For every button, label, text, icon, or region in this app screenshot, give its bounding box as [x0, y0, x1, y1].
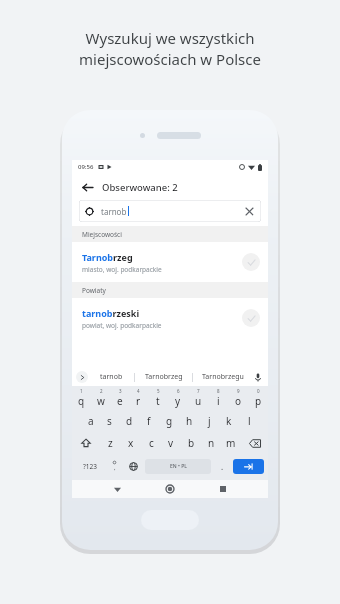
- staticText: 0: [257, 388, 260, 394]
- button[interactable]: j: [199, 410, 219, 432]
- button[interactable]: tarnobrzeski: [72, 298, 268, 338]
- button[interactable]: z: [100, 432, 121, 454]
- button[interactable]: tarnob: [79, 200, 261, 222]
- button[interactable]: 6: [168, 386, 188, 410]
- staticText: g: [166, 414, 173, 428]
- button[interactable]: 2: [91, 386, 110, 410]
- button[interactable]: Clear: [243, 205, 255, 217]
- button[interactable]: 0: [248, 386, 268, 410]
- staticText: j: [208, 414, 211, 428]
- button[interactable]: c: [141, 432, 161, 454]
- button[interactable]: Follow: [242, 309, 260, 327]
- button[interactable]: m: [221, 432, 241, 454]
- button[interactable]: .: [213, 454, 232, 478]
- staticText: ,: [114, 464, 116, 472]
- button[interactable]: a: [81, 410, 100, 432]
- button[interactable]: Back: [78, 178, 96, 196]
- button[interactable]: More suggestions: [76, 371, 88, 383]
- staticText: 9: [237, 388, 240, 394]
- button[interactable]: 7: [188, 386, 208, 410]
- button[interactable]: Follow: [242, 253, 260, 271]
- button[interactable]: v: [161, 432, 181, 454]
- staticText: 4: [137, 388, 140, 394]
- staticText: 3: [119, 388, 122, 394]
- staticText: 2: [100, 388, 103, 394]
- button[interactable]: Comma: [105, 454, 124, 478]
- button[interactable]: Enter: [233, 459, 264, 474]
- staticText: 6: [177, 388, 180, 394]
- staticText: y: [175, 394, 181, 408]
- staticText: n: [208, 436, 215, 450]
- staticText: 8: [217, 388, 220, 394]
- button[interactable]: 5: [148, 386, 168, 410]
- staticText: k: [226, 414, 232, 428]
- staticText: o: [235, 394, 242, 408]
- staticText: 7: [197, 388, 200, 394]
- button[interactable]: Back: [109, 481, 125, 497]
- staticText: l: [248, 414, 251, 428]
- staticText: m: [226, 436, 236, 450]
- button[interactable]: f: [139, 410, 159, 432]
- button[interactable]: 1: [72, 386, 91, 410]
- staticText: e: [117, 394, 123, 408]
- button[interactable]: n: [201, 432, 221, 454]
- staticText: Powiaty: [82, 286, 106, 295]
- button[interactable]: EN • PL: [145, 459, 211, 474]
- staticText: z: [108, 436, 113, 450]
- staticText: Wyszukuj we wszystkich miejscowościach w…: [79, 28, 261, 70]
- staticText: f: [147, 414, 151, 428]
- staticText: EN • PL: [170, 463, 187, 470]
- staticText: Obserwowane: 2: [102, 181, 178, 194]
- button[interactable]: Voice input: [252, 371, 264, 383]
- button[interactable]: 8: [208, 386, 228, 410]
- staticText: Tarnobrzegu: [202, 372, 244, 382]
- staticText: Miejscowości: [82, 230, 122, 239]
- button[interactable]: g: [159, 410, 179, 432]
- button[interactable]: tarnob: [88, 372, 134, 382]
- button[interactable]: 9: [228, 386, 248, 410]
- button[interactable]: l: [239, 410, 259, 432]
- button[interactable]: Home: [162, 481, 178, 497]
- staticText: tarnob: [100, 372, 123, 382]
- button[interactable]: Backspace: [241, 432, 268, 454]
- staticText: w: [97, 394, 105, 408]
- staticText: miasto, woj. podkarpackie: [82, 265, 162, 274]
- button[interactable]: Tarnobrzegu: [193, 372, 252, 382]
- staticText: 5: [157, 388, 160, 394]
- button[interactable]: Tarnobrzeg: [72, 242, 268, 282]
- staticText: h: [186, 414, 193, 428]
- button[interactable]: 4: [129, 386, 148, 410]
- staticText: .: [221, 461, 224, 472]
- button[interactable]: s: [100, 410, 119, 432]
- button[interactable]: Change language: [124, 454, 143, 478]
- staticText: c: [149, 436, 154, 450]
- staticText: b: [188, 436, 195, 450]
- staticText: tarnobrzeski: [82, 307, 140, 319]
- staticText: 09:56: [78, 163, 94, 171]
- staticText: d: [126, 414, 133, 428]
- staticText: a: [88, 414, 94, 428]
- button[interactable]: x: [121, 432, 141, 454]
- button[interactable]: 3: [110, 386, 129, 410]
- button[interactable]: b: [181, 432, 201, 454]
- staticText: tarnob: [101, 206, 127, 217]
- button[interactable]: k: [219, 410, 239, 432]
- button[interactable]: Tarnobrzeg: [135, 372, 192, 382]
- button[interactable]: Shift: [72, 432, 100, 454]
- button[interactable]: h: [179, 410, 199, 432]
- staticText: powiat, woj. podkarpackie: [82, 321, 162, 330]
- button[interactable]: ?123: [75, 454, 105, 478]
- button[interactable]: Recent apps: [215, 481, 231, 497]
- staticText: 1: [80, 388, 83, 394]
- staticText: u: [195, 394, 202, 408]
- staticText: v: [168, 436, 174, 450]
- staticText: Tarnobrzeg: [145, 372, 183, 382]
- staticText: ?123: [83, 462, 97, 471]
- staticText: q: [78, 394, 85, 408]
- staticText: Tarnobrzeg: [82, 251, 133, 263]
- staticText: x: [128, 436, 134, 450]
- button[interactable]: d: [119, 410, 139, 432]
- staticText: p: [255, 394, 262, 408]
- staticText: r: [136, 394, 141, 408]
